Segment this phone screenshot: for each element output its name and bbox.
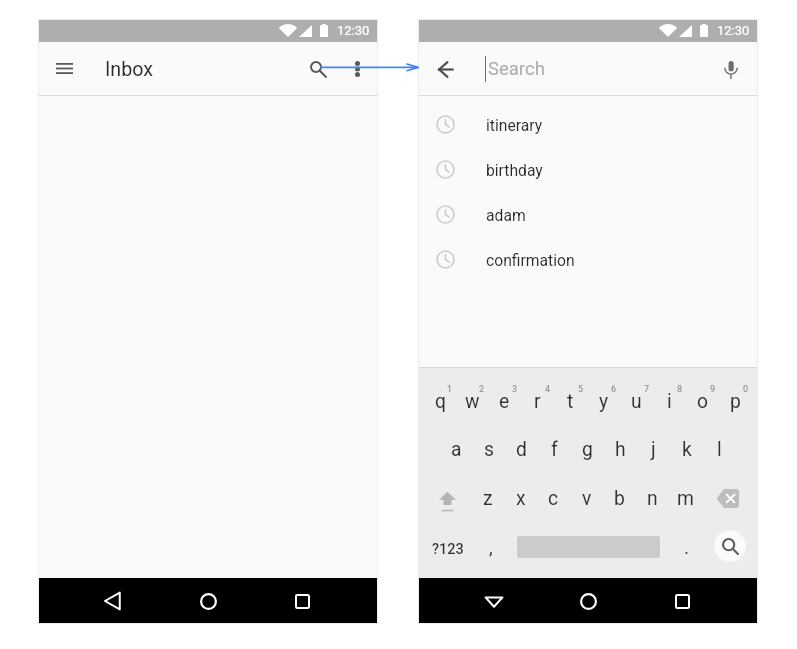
button[interactable]: adam [418, 192, 758, 237]
staticText: 9 [710, 384, 716, 395]
staticText: q [435, 390, 446, 413]
button[interactable]: p [719, 377, 752, 421]
button[interactable]: t [554, 377, 587, 421]
button[interactable]: , [477, 527, 505, 571]
button[interactable]: Recent apps [284, 583, 320, 619]
button[interactable]: m [669, 474, 702, 518]
staticText: h [615, 438, 626, 461]
button[interactable]: w [456, 377, 488, 421]
staticText: Search [488, 58, 545, 80]
button[interactable]: l [703, 425, 736, 469]
staticText: a [451, 438, 462, 461]
staticText: u [631, 390, 642, 413]
staticText: m [677, 487, 694, 510]
button[interactable]: b [603, 474, 636, 518]
staticText: x [516, 487, 526, 510]
button[interactable]: e [488, 377, 521, 421]
staticText: k [682, 438, 692, 461]
button[interactable]: h [604, 425, 637, 469]
button[interactable]: f [538, 425, 571, 469]
button[interactable]: Back [426, 50, 464, 88]
staticText: o [697, 390, 709, 413]
staticText: 8 [677, 384, 683, 395]
staticText: 4 [545, 384, 551, 395]
button[interactable]: r [521, 377, 554, 421]
staticText: f [551, 438, 558, 461]
staticText: t [567, 390, 574, 413]
staticText: confirmation [486, 251, 575, 269]
button[interactable]: a [440, 425, 472, 469]
staticText: 6 [611, 384, 617, 395]
button[interactable]: k [670, 425, 703, 469]
staticText: Inbox [105, 58, 154, 81]
staticText: y [599, 390, 609, 413]
button[interactable]: Search [299, 50, 337, 88]
button[interactable]: c [537, 474, 570, 518]
staticText: p [730, 390, 741, 413]
button[interactable] [505, 527, 672, 571]
staticText: 12:30 [717, 23, 750, 38]
staticText: 0 [743, 384, 749, 395]
button[interactable]: Home [570, 583, 606, 619]
staticText: c [548, 487, 559, 510]
staticText: 5 [578, 384, 584, 395]
staticText: s [484, 438, 494, 461]
staticText: n [647, 487, 658, 510]
button[interactable]: More options [338, 50, 376, 88]
button[interactable]: u [620, 377, 653, 421]
button[interactable]: n [636, 474, 669, 518]
button[interactable]: j [637, 425, 670, 469]
button[interactable]: y [587, 377, 620, 421]
staticText: , [489, 536, 493, 558]
staticText: e [499, 390, 510, 413]
staticText: 7 [644, 384, 650, 395]
staticText: v [582, 487, 592, 510]
staticText: 2 [479, 384, 485, 395]
staticText: 1 [447, 384, 453, 395]
button[interactable]: o [686, 377, 719, 421]
button[interactable]: Delete [702, 474, 758, 518]
button[interactable]: ?123 [418, 527, 477, 571]
button[interactable]: birthday [418, 147, 758, 192]
staticText: g [582, 438, 593, 461]
staticText: i [667, 390, 672, 413]
button[interactable]: Search [713, 529, 747, 563]
staticText: z [483, 487, 493, 510]
button[interactable]: Shift [418, 474, 471, 518]
button[interactable]: Hide keyboard [476, 583, 512, 619]
staticText: adam [486, 206, 526, 224]
staticText: l [717, 438, 722, 461]
button[interactable]: d [505, 425, 538, 469]
button[interactable]: q [424, 377, 456, 421]
button[interactable]: . [672, 527, 702, 571]
button[interactable]: s [472, 425, 505, 469]
button[interactable]: i [653, 377, 686, 421]
button[interactable]: Recent apps [664, 583, 700, 619]
button[interactable]: Open navigation drawer [45, 50, 83, 88]
staticText: 3 [512, 384, 518, 395]
staticText: ?123 [432, 541, 464, 558]
button[interactable]: Back [96, 583, 132, 619]
staticText: b [614, 487, 625, 510]
button[interactable]: g [571, 425, 604, 469]
staticText: r [534, 390, 541, 413]
button[interactable]: Home [190, 583, 226, 619]
button[interactable]: Voice search [712, 50, 750, 88]
button[interactable]: x [504, 474, 537, 518]
button[interactable]: confirmation [418, 237, 758, 282]
staticText: w [465, 390, 480, 413]
button[interactable]: v [570, 474, 603, 518]
staticText: d [516, 438, 527, 461]
staticText: birthday [486, 161, 543, 179]
staticText: 12:30 [337, 23, 370, 38]
button[interactable]: z [471, 474, 504, 518]
staticText: itinerary [486, 116, 543, 134]
staticText: j [651, 438, 656, 461]
button[interactable]: itinerary [418, 102, 758, 147]
staticText: . [684, 536, 690, 558]
